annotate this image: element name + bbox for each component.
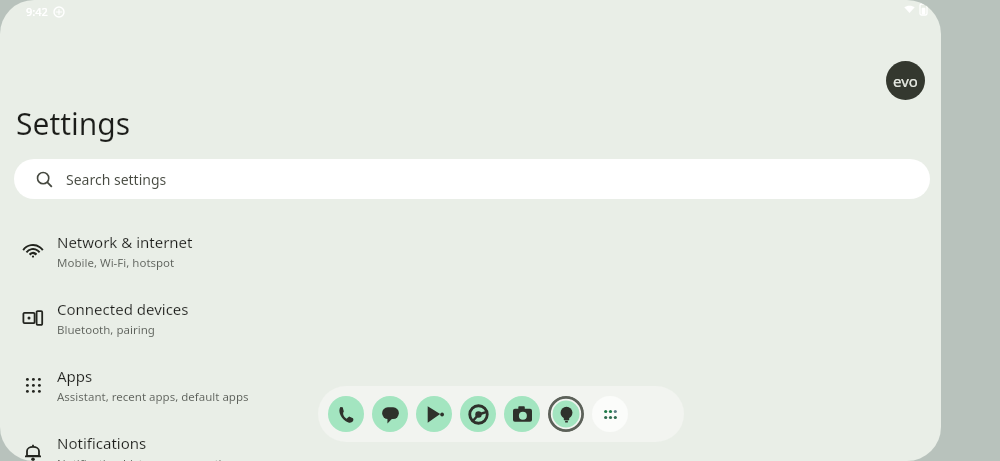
button[interactable]: Network & internet — [0, 222, 941, 280]
button[interactable]: Camera — [504, 396, 540, 432]
staticText: Connected devices — [57, 299, 189, 319]
staticText: Mobile, Wi-Fi, hotspot — [57, 255, 175, 271]
staticText: Assistant, recent apps, default apps — [57, 389, 249, 405]
staticText: Notifications — [57, 433, 147, 453]
staticText: Search settings — [66, 170, 167, 189]
button[interactable]: Messages — [372, 396, 408, 432]
staticText: Settings — [16, 103, 131, 144]
staticText: Apps — [57, 366, 93, 386]
button[interactable]: Search settings — [14, 159, 930, 199]
staticText: Notification history, conversations — [57, 456, 242, 461]
button[interactable]: Phone — [328, 396, 364, 432]
staticText: Network & internet — [57, 232, 193, 252]
button[interactable]: All apps — [592, 396, 628, 432]
button[interactable]: Chrome — [460, 396, 496, 432]
button[interactable]: Apps — [0, 356, 941, 414]
staticText: 9:42 — [26, 4, 48, 19]
button[interactable]: Notifications — [0, 423, 941, 461]
staticText: evo — [893, 71, 918, 91]
button[interactable]: Assistant — [548, 396, 584, 432]
button[interactable]: Connected devices — [0, 289, 941, 347]
button[interactable]: Account — [886, 61, 925, 100]
button[interactable]: Play Store — [416, 396, 452, 432]
staticText: Bluetooth, pairing — [57, 322, 155, 338]
